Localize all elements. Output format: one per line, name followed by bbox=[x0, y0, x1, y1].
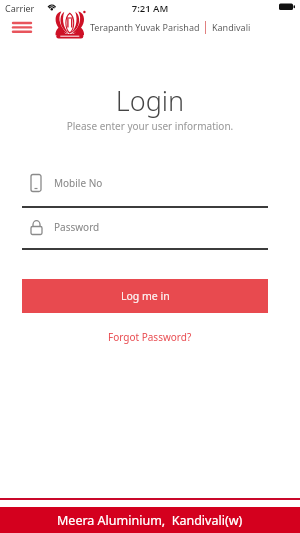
staticText: Please enter your user information. bbox=[0, 119, 300, 133]
staticText: Login bbox=[0, 82, 300, 119]
button[interactable]: Meera Aluminium, Kandivali(w) bbox=[0, 507, 300, 533]
staticText: Meera Aluminium, Kandivali(w) bbox=[57, 512, 243, 529]
staticText: Kandivali bbox=[212, 21, 251, 33]
staticText: Forgot Password? bbox=[108, 330, 192, 344]
staticText: 7:21 AM bbox=[0, 2, 300, 15]
staticText: Carrier bbox=[5, 2, 35, 14]
button[interactable]: Log me in bbox=[22, 279, 268, 313]
staticText: Password bbox=[54, 220, 100, 234]
staticText: Terapanth Yuvak Parishad bbox=[90, 21, 200, 33]
button[interactable] bbox=[8, 16, 36, 38]
staticText: Log me in bbox=[121, 289, 170, 303]
staticText: Mobile No bbox=[54, 176, 103, 190]
button[interactable]: Forgot Password? bbox=[108, 330, 192, 344]
